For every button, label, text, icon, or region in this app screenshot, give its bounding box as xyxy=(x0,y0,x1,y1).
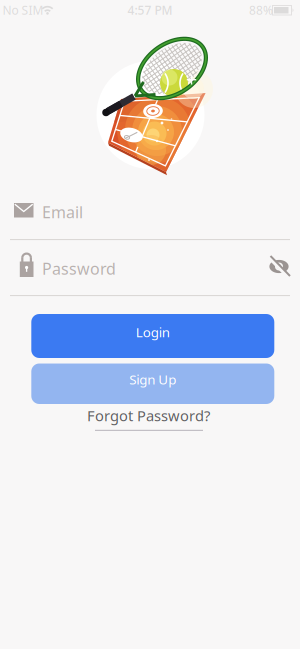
button[interactable]: Login xyxy=(31,314,274,358)
staticText: Sign Up xyxy=(129,370,176,388)
staticText: Login xyxy=(136,323,170,341)
button[interactable]: Password xyxy=(10,252,290,296)
staticText: 88% xyxy=(249,2,273,18)
button[interactable] xyxy=(267,255,291,278)
staticText: Forgot Password? xyxy=(87,406,210,425)
button[interactable]: Forgot Password? xyxy=(87,406,210,425)
button[interactable]: Sign Up xyxy=(31,363,274,404)
staticText: No SIM xyxy=(2,2,43,18)
button[interactable]: Email xyxy=(10,196,290,240)
staticText: 4:57 PM xyxy=(127,2,172,18)
staticText: Email xyxy=(42,201,83,223)
staticText: Password xyxy=(42,258,116,279)
